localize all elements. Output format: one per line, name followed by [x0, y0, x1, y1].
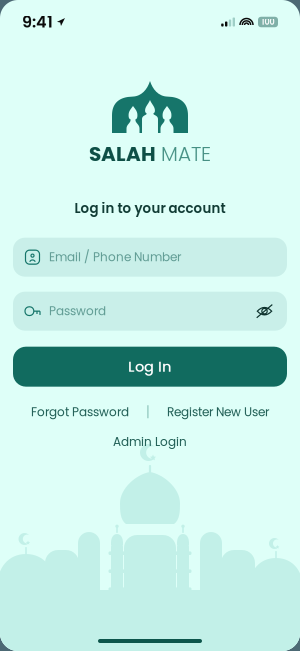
button[interactable]: Forgot Password — [27, 400, 133, 424]
button[interactable]: Log In — [13, 347, 287, 387]
staticText: 100 — [261, 16, 274, 28]
staticText: Admin Login — [113, 433, 187, 450]
staticText: Email / Phone Number — [49, 249, 181, 266]
staticText: Log In — [128, 356, 172, 377]
button[interactable]: Register New User — [163, 400, 273, 424]
staticText: Log in to your account — [74, 199, 225, 218]
staticText: Forgot Password — [31, 404, 129, 420]
staticText: 9:41 — [22, 11, 53, 33]
button[interactable]: Show password — [254, 302, 275, 320]
staticText: | — [146, 402, 150, 422]
button[interactable]: Admin Login — [107, 429, 193, 454]
staticText: SALAH — [89, 140, 156, 168]
staticText: Password — [49, 303, 106, 320]
staticText: Register New User — [167, 404, 269, 420]
staticText: MATE — [156, 140, 211, 168]
